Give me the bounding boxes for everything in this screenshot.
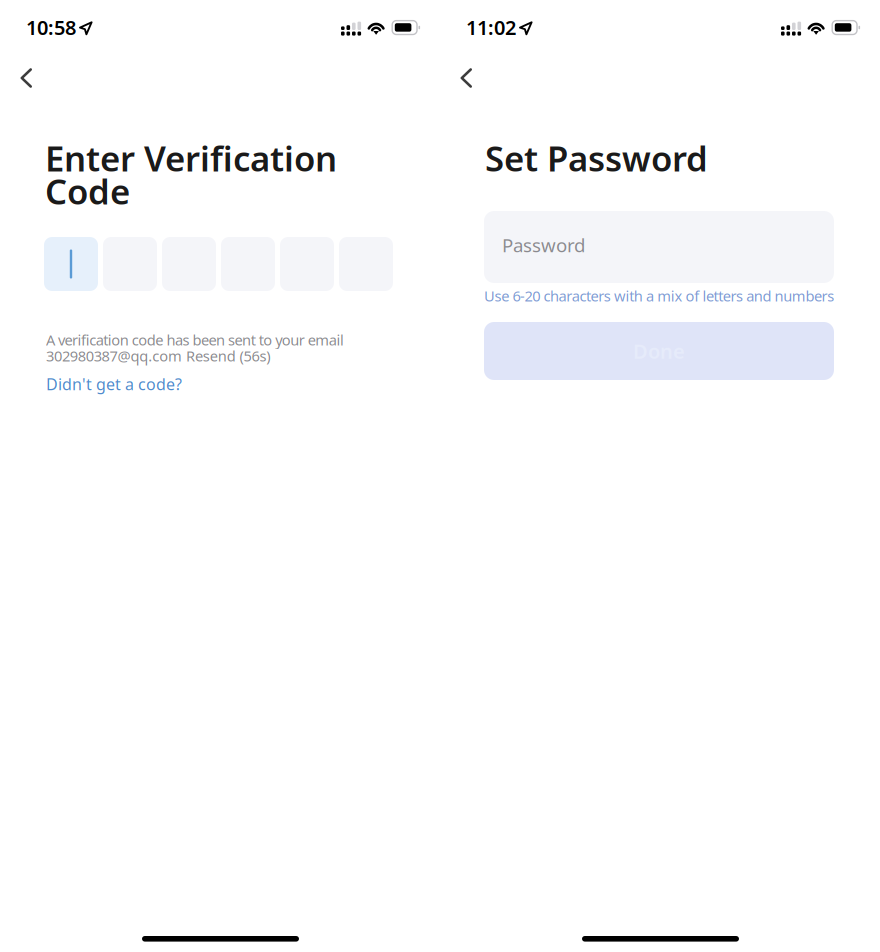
- button[interactable]: Didn't get a code?: [46, 374, 206, 394]
- staticText: 10:58: [26, 14, 76, 41]
- staticText: Didn't get a code?: [46, 373, 182, 395]
- button[interactable]: Back: [440, 56, 492, 100]
- staticText: A verification code has been sent to you…: [46, 330, 344, 349]
- staticText: 302980387@qq.com Resend (56s): [46, 346, 270, 365]
- staticText: Password: [502, 233, 585, 257]
- button[interactable]: Back: [0, 56, 52, 100]
- staticText: Use 6-20 characters with a mix of letter…: [484, 286, 834, 305]
- staticText: Code: [45, 168, 130, 214]
- button[interactable]: Verification code: [44, 237, 393, 291]
- staticText: Enter Verification: [45, 135, 337, 181]
- staticText: Set Password: [485, 135, 708, 181]
- button[interactable]: Password: [484, 211, 834, 283]
- staticText: 11:02: [466, 14, 516, 41]
